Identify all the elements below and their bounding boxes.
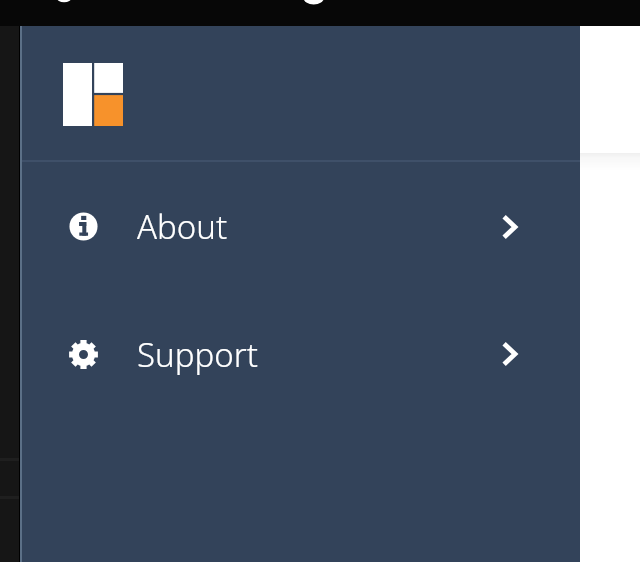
other: About [69,212,98,241]
other: Open [500,212,520,242]
button[interactable]: Support [22,290,580,418]
other: Support [69,340,98,369]
button[interactable]: About [22,162,580,291]
other: Open [500,339,520,369]
staticText: About [137,204,228,249]
staticText: Support [137,332,258,377]
